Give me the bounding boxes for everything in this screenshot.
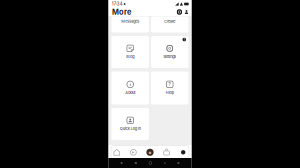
staticText: Help xyxy=(166,90,174,95)
staticText: More xyxy=(112,7,131,16)
button[interactable]: Account xyxy=(182,10,189,14)
button[interactable]: Quick Log In xyxy=(111,108,149,140)
staticText: About xyxy=(125,90,135,95)
staticText: Settings xyxy=(163,54,176,59)
button[interactable]: About xyxy=(111,71,149,104)
button[interactable]: Home xyxy=(108,149,125,155)
button[interactable]: ? xyxy=(151,71,188,104)
button[interactable]: Messages xyxy=(111,16,149,32)
staticText: Create xyxy=(164,19,175,24)
button[interactable]: Blog xyxy=(111,36,149,68)
staticText: Blog xyxy=(126,54,134,59)
button[interactable]: Settings xyxy=(151,36,188,68)
button[interactable]: More xyxy=(175,150,191,154)
staticText: ? xyxy=(168,81,171,87)
button[interactable]: Create xyxy=(151,16,188,32)
button[interactable]: Shop xyxy=(158,149,175,155)
button[interactable]: Settings xyxy=(177,10,182,14)
button[interactable]: Profile xyxy=(142,149,158,156)
staticText: 17:34 xyxy=(112,1,123,7)
staticText: Quick Log In xyxy=(120,126,141,131)
staticText: 1 xyxy=(184,38,185,41)
button[interactable]: Discover xyxy=(125,149,142,155)
staticText: Messages xyxy=(121,19,139,24)
